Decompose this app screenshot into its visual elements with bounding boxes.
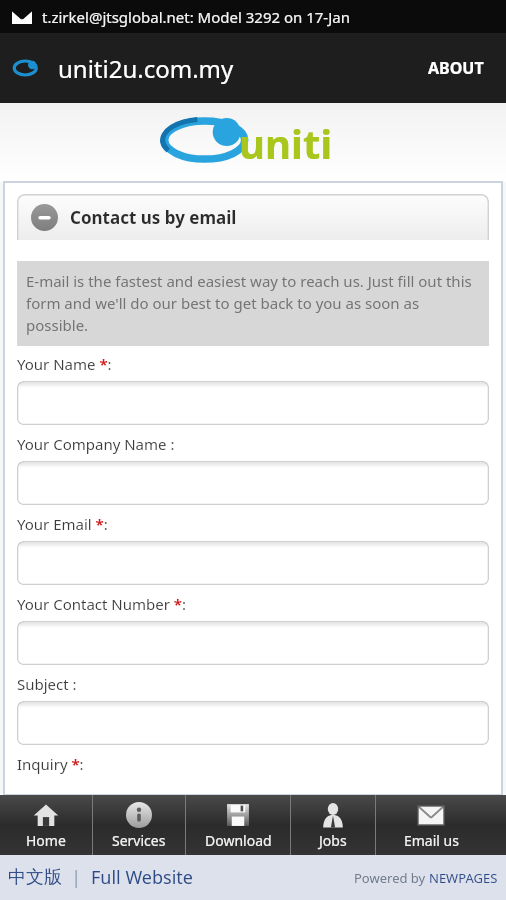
button[interactable]: ABOUT bbox=[422, 51, 490, 85]
button[interactable]: Services bbox=[93, 795, 185, 855]
staticText: Contact us by email bbox=[70, 206, 237, 229]
button[interactable]: Contact us by email bbox=[17, 194, 489, 240]
staticText: Jobs bbox=[319, 831, 347, 850]
staticText: Your Company Name : bbox=[17, 434, 175, 454]
staticText: Inquiry *: bbox=[17, 754, 84, 774]
button[interactable]: 中文版 bbox=[8, 866, 62, 889]
staticText: 中文版 bbox=[8, 866, 62, 889]
button[interactable] bbox=[17, 701, 489, 745]
staticText: Full Website bbox=[91, 865, 193, 890]
button[interactable]: Home bbox=[0, 795, 92, 855]
button[interactable]: Email us bbox=[376, 795, 486, 855]
staticText: | bbox=[62, 865, 91, 890]
staticText: Subject : bbox=[17, 674, 77, 694]
staticText: Services bbox=[112, 831, 166, 850]
button[interactable] bbox=[17, 381, 489, 425]
staticText: Email us bbox=[404, 831, 459, 850]
button[interactable] bbox=[17, 541, 489, 585]
staticText: Powered by bbox=[354, 869, 429, 887]
staticText: Your Name *: bbox=[17, 354, 112, 374]
staticText: Your Email *: bbox=[17, 514, 108, 534]
button[interactable]: uniti2u.com.my bbox=[16, 52, 234, 85]
staticText: t.zirkel@jtsglobal.net: Model 3292 on 17… bbox=[42, 7, 350, 27]
button[interactable] bbox=[17, 461, 489, 505]
button[interactable]: Full Website bbox=[91, 865, 193, 890]
staticText: uniti2u.com.my bbox=[58, 52, 234, 85]
staticText: NEWPAGES bbox=[429, 869, 498, 887]
staticText: Download bbox=[205, 831, 272, 850]
staticText: Your Contact Number *: bbox=[17, 594, 186, 614]
button[interactable]: Download bbox=[186, 795, 290, 855]
button[interactable]: Jobs bbox=[291, 795, 375, 855]
staticText: Home bbox=[26, 831, 66, 850]
staticText: uniti bbox=[239, 116, 333, 170]
button[interactable] bbox=[17, 621, 489, 665]
staticText: E-mail is the fastest and easiest way to… bbox=[26, 271, 480, 336]
button[interactable]: NEWPAGES bbox=[429, 869, 498, 887]
staticText: ABOUT bbox=[428, 57, 484, 79]
